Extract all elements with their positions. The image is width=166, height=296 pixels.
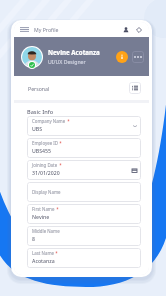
staticText: UBS455 <box>32 147 51 154</box>
staticText: UI/UX Designer <box>48 58 86 65</box>
button[interactable]: Edit profile <box>116 51 128 63</box>
button[interactable]: Personal <box>27 81 51 96</box>
staticText: * <box>55 206 59 212</box>
button[interactable]: Last Name <box>27 248 141 268</box>
staticText: First Name <box>32 206 55 212</box>
staticText: Employee ID <box>32 140 58 146</box>
staticText: Last Name <box>32 250 54 256</box>
button[interactable]: Company Name <box>27 116 141 136</box>
staticText: Nevine <box>32 213 50 220</box>
staticText: Acotanza <box>32 257 55 264</box>
staticText: Nevine Acotanza <box>48 48 100 56</box>
staticText: * <box>58 140 62 146</box>
staticText: Company Name <box>32 118 66 124</box>
staticText: * <box>66 118 70 124</box>
staticText: * <box>58 162 62 168</box>
button[interactable]: Joining Date <box>27 160 141 180</box>
staticText: UBS <box>32 125 43 132</box>
button[interactable]: Notifications <box>133 24 144 35</box>
button[interactable]: Display Name <box>27 182 141 202</box>
button[interactable]: More options <box>132 51 144 63</box>
staticText: * <box>54 250 58 256</box>
button[interactable]: Open navigation menu <box>19 24 30 35</box>
button[interactable]: List view <box>129 82 141 94</box>
button[interactable]: First Name <box>27 204 141 224</box>
staticText: Basic Info <box>27 108 54 116</box>
staticText: 31/01/2020 <box>32 169 60 176</box>
staticText: My Profile <box>34 26 59 33</box>
staticText: Joining Date <box>32 162 58 168</box>
staticText: Middle Name <box>32 228 60 234</box>
staticText: 8 <box>32 235 35 242</box>
button[interactable]: Middle Name <box>27 226 141 246</box>
staticText: Display Name <box>32 189 61 195</box>
button[interactable]: Employee ID <box>27 138 141 158</box>
staticText: Personal <box>28 85 50 92</box>
button[interactable]: Account <box>120 24 131 35</box>
